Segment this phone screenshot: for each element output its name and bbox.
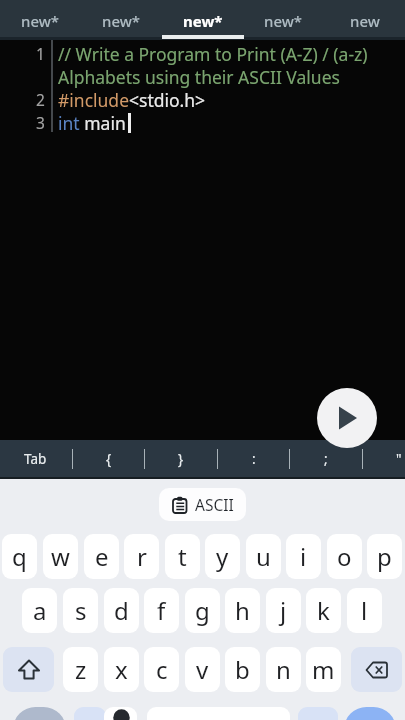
button[interactable]: u [246, 534, 281, 579]
button[interactable]: n [266, 647, 301, 692]
staticText: } [178, 450, 184, 468]
staticText: Alphabets using their ASCII Values [58, 65, 340, 88]
staticText: y [216, 540, 229, 573]
staticText: u [256, 540, 271, 573]
button[interactable]: ASCII [159, 488, 246, 521]
button[interactable]: h [225, 588, 260, 633]
button[interactable]: e [84, 534, 119, 579]
staticText: new [350, 11, 380, 31]
button[interactable]: d [104, 588, 139, 633]
button[interactable]: b [225, 647, 260, 692]
button[interactable]: p [367, 534, 402, 579]
button[interactable]: " [379, 440, 405, 477]
button[interactable]: new [324, 0, 405, 40]
button[interactable]: o [327, 534, 362, 579]
button[interactable] [13, 707, 66, 720]
staticText: b [235, 653, 250, 686]
button[interactable]: v [185, 647, 220, 692]
button[interactable]: s [63, 588, 98, 633]
button[interactable] [344, 707, 396, 720]
staticText: ; [324, 450, 328, 468]
button[interactable] [3, 647, 54, 692]
staticText: new* [183, 11, 223, 31]
staticText: f [157, 594, 166, 627]
button[interactable]: a [22, 588, 57, 633]
staticText: q [12, 540, 27, 573]
button[interactable]: new* [162, 0, 243, 40]
staticText: h [235, 594, 250, 627]
button[interactable] [317, 388, 377, 448]
staticText: i [300, 540, 307, 573]
button[interactable]: k [306, 588, 341, 633]
staticText: p [377, 540, 392, 573]
button[interactable]: g [185, 588, 220, 633]
staticText: s [75, 594, 87, 627]
staticText: g [195, 594, 210, 627]
button[interactable] [74, 707, 106, 720]
button[interactable]: : [234, 440, 274, 477]
button[interactable]: Tab [10, 440, 60, 477]
button[interactable]: z [63, 647, 98, 692]
button[interactable]: new* [81, 0, 162, 40]
staticText: j [280, 594, 287, 627]
button[interactable] [298, 707, 338, 720]
staticText: z [75, 653, 87, 686]
staticText: ASCII [195, 494, 234, 515]
staticText: { [106, 450, 112, 468]
button[interactable]: m [306, 647, 341, 692]
button[interactable]: x [104, 647, 139, 692]
staticText: o [337, 540, 352, 573]
staticText: 1 [36, 43, 45, 64]
staticText: l [361, 594, 368, 627]
staticText: #include<stdio.h> [58, 88, 206, 111]
staticText: int main [58, 111, 126, 134]
staticText: new* [264, 11, 303, 31]
button[interactable] [104, 707, 137, 720]
button[interactable]: f [144, 588, 179, 633]
button[interactable]: y [205, 534, 240, 579]
staticText: : [252, 450, 256, 468]
staticText: w [51, 540, 70, 573]
button[interactable]: q [2, 534, 37, 579]
staticText: r [137, 540, 147, 573]
staticText: t [178, 540, 187, 573]
staticText: 3 [36, 112, 45, 133]
staticText: 2 [36, 89, 45, 110]
button[interactable]: c [144, 647, 179, 692]
button[interactable]: ; [306, 440, 346, 477]
staticText: m [312, 653, 335, 686]
staticText: new* [102, 11, 141, 31]
staticText: d [114, 594, 129, 627]
staticText: x [115, 653, 128, 686]
staticText: v [196, 653, 209, 686]
button[interactable]: w [43, 534, 78, 579]
staticText: " [396, 450, 402, 468]
button[interactable]: t [165, 534, 200, 579]
staticText: // Write a Program to Print (A-Z) / (a-z… [58, 42, 368, 65]
button[interactable]: { [89, 440, 129, 477]
staticText: c [156, 653, 168, 686]
staticText: new* [21, 11, 60, 31]
button[interactable]: } [161, 440, 201, 477]
button[interactable]: new* [0, 0, 81, 40]
staticText: Tab [24, 450, 47, 468]
staticText: n [276, 653, 291, 686]
button[interactable]: new* [243, 0, 324, 40]
button[interactable]: r [124, 534, 159, 579]
button[interactable]: i [286, 534, 321, 579]
staticText: k [317, 594, 330, 627]
button[interactable]: j [266, 588, 301, 633]
staticText: a [33, 594, 47, 627]
button[interactable]: l [347, 588, 382, 633]
button[interactable] [351, 647, 402, 692]
staticText: e [95, 540, 109, 573]
